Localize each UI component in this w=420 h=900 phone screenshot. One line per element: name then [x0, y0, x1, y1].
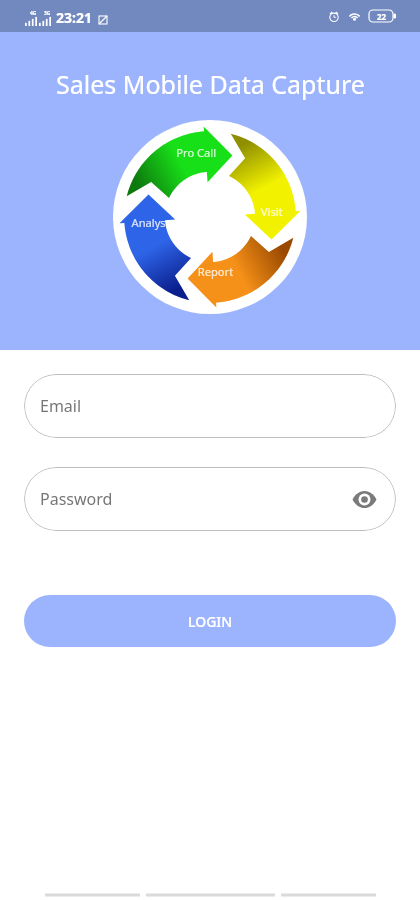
- staticText: 4G: [30, 10, 37, 17]
- staticText: 23:21: [56, 8, 92, 27]
- staticText: LOGIN: [188, 612, 233, 631]
- button[interactable]: Email: [24, 374, 396, 438]
- staticText: Email: [40, 395, 82, 417]
- staticText: Password: [40, 488, 113, 510]
- button[interactable]: Password: [24, 467, 396, 531]
- staticText: 22: [377, 11, 387, 22]
- button[interactable]: Show password: [348, 483, 380, 515]
- button[interactable]: LOGIN: [24, 595, 396, 647]
- staticText: Sales Mobile Data Capture: [56, 67, 365, 101]
- staticText: 3G: [44, 10, 51, 17]
